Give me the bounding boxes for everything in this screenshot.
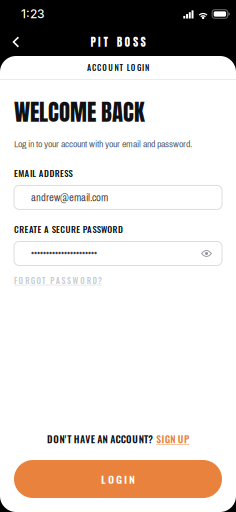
staticText: DON'T HAVE AN ACCOUNT?: [47, 432, 153, 446]
staticText: andrew@email.com: [31, 190, 108, 205]
button[interactable]: L O G I N: [14, 460, 222, 498]
staticText: 1:23: [21, 7, 45, 21]
staticText: EMAIL ADDRESS: [14, 166, 73, 179]
staticText: SIGN UP: [156, 432, 189, 446]
staticText: WELCOME BACK: [14, 95, 145, 129]
staticText: FORGOT PASSWORD?: [14, 274, 102, 286]
button[interactable]: Back: [5, 31, 27, 53]
staticText: ACCOUNT LOGIN: [87, 62, 149, 73]
staticText: ••••••••••••••••••••••: [31, 246, 97, 261]
staticText: CREATE A SECURE PASSWORD: [14, 222, 123, 235]
staticText: L O G I N: [101, 471, 135, 487]
staticText: Log in to your account with your email a…: [14, 137, 192, 150]
staticText: PIT BOSS: [90, 33, 146, 51]
button[interactable]: andrew@email.com: [14, 185, 222, 209]
button[interactable]: DON'T HAVE AN ACCOUNT?: [14, 429, 222, 449]
button[interactable]: FORGOT PASSWORD?: [14, 271, 102, 289]
button[interactable]: ••••••••••••••••••••••: [14, 241, 222, 265]
